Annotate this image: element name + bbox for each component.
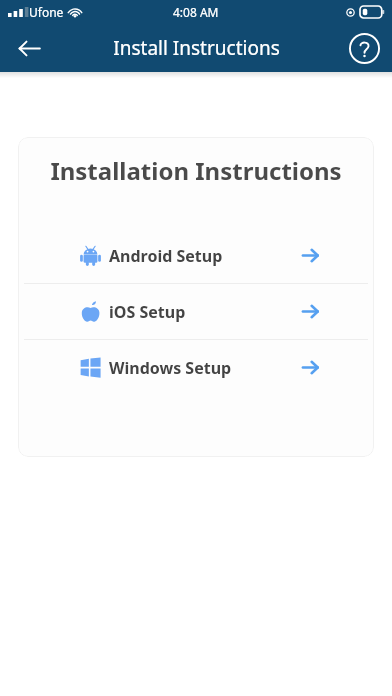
staticText: Installation Instructions <box>18 154 374 187</box>
button[interactable]: iOS Setup <box>18 284 374 339</box>
button[interactable]: Help <box>344 28 384 68</box>
staticText: Install Instructions <box>113 35 280 61</box>
staticText: Android Setup <box>109 245 223 267</box>
button[interactable]: Back <box>6 25 52 71</box>
staticText: iOS Setup <box>109 301 186 323</box>
button[interactable]: Android Setup <box>18 228 374 283</box>
staticText: Windows Setup <box>109 357 232 379</box>
staticText: Ufone <box>29 4 64 20</box>
staticText: 4:08 AM <box>173 4 219 20</box>
button[interactable]: Windows Setup <box>18 340 374 395</box>
